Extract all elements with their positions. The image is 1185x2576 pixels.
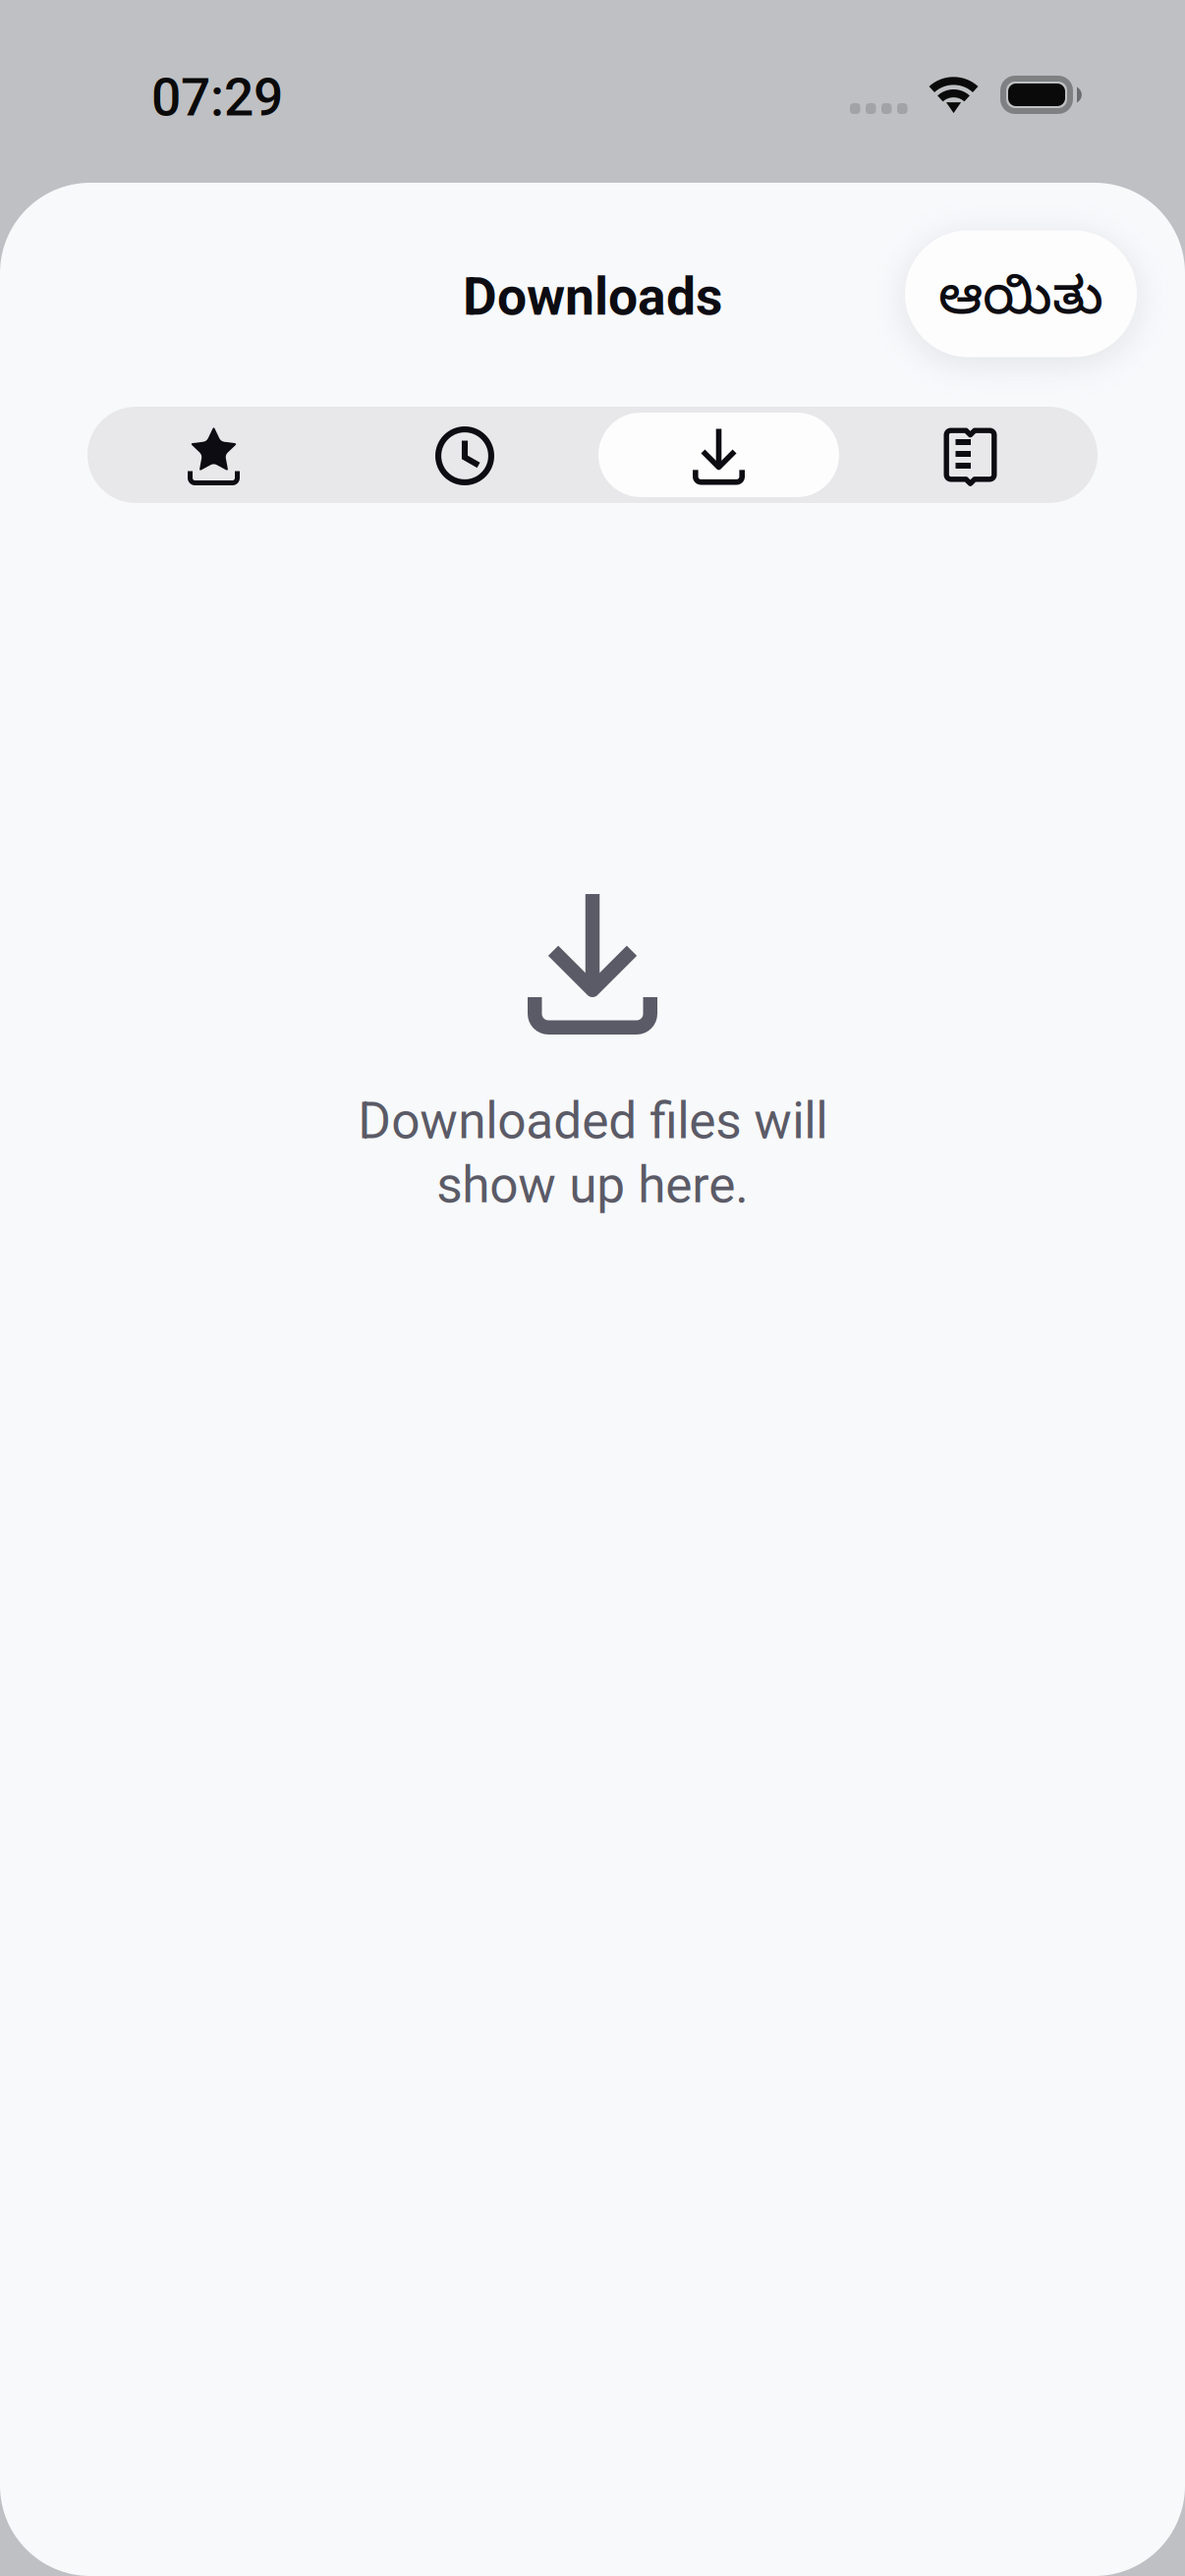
staticText: 07:29 [151,67,283,128]
button[interactable]: Downloads [592,407,845,503]
button[interactable]: Bookmarks [87,407,340,503]
staticText: ಆಯಿತು [938,272,1103,341]
button[interactable]: History [340,407,592,503]
staticText: Downloaded files will show up here. [358,1092,827,1215]
button[interactable]: ಆಯಿತು [905,230,1137,357]
staticText: Downloads [463,266,722,327]
button[interactable]: Reading List [845,407,1098,503]
